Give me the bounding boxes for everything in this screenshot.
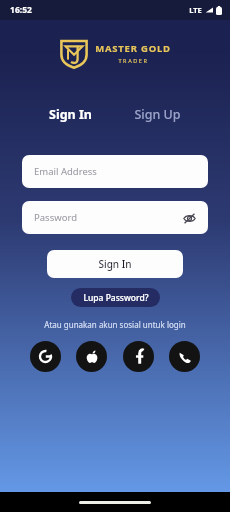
staticText: Sign Up bbox=[134, 106, 181, 123]
staticText: Sign In bbox=[98, 257, 132, 271]
button[interactable]: Sign Up bbox=[124, 102, 191, 127]
button[interactable]: Sign in with Facebook bbox=[123, 341, 154, 372]
staticText: MASTER GOLD bbox=[95, 42, 171, 55]
button[interactable]: Password bbox=[22, 201, 208, 234]
staticText: Sign In bbox=[49, 106, 92, 123]
staticText: Lupa Password? bbox=[83, 292, 149, 304]
button[interactable]: Sign In bbox=[39, 102, 102, 127]
staticText: Email Address bbox=[34, 165, 97, 178]
button[interactable]: Show password bbox=[178, 207, 200, 229]
button[interactable]: Lupa Password? bbox=[71, 288, 160, 307]
staticText: Password bbox=[34, 211, 77, 224]
staticText: TRADER bbox=[118, 57, 149, 64]
staticText: LTE bbox=[189, 5, 202, 15]
button[interactable]: Email Address bbox=[22, 155, 208, 188]
staticText: Atau gunakan akun sosial untuk login bbox=[44, 319, 186, 330]
button[interactable]: Sign In bbox=[47, 250, 183, 278]
staticText: 16:52 bbox=[10, 4, 32, 16]
button[interactable]: Sign in with Apple bbox=[76, 341, 107, 372]
button[interactable]: Sign in with phone number bbox=[169, 341, 200, 372]
button[interactable]: Sign in with Google bbox=[30, 341, 61, 372]
